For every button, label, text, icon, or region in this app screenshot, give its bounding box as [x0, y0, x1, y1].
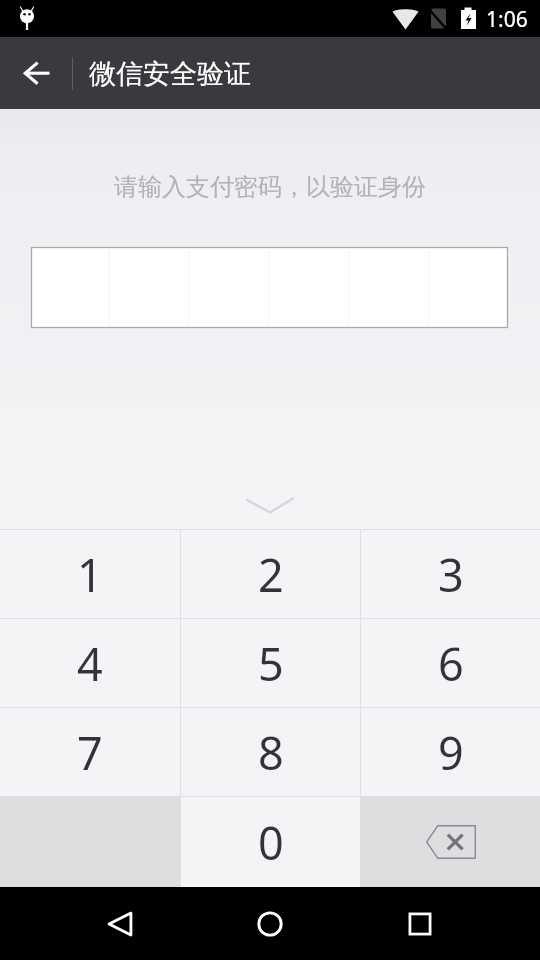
staticText: 1: [77, 544, 103, 605]
button[interactable]: 8: [181, 708, 360, 796]
button[interactable]: 5: [181, 619, 360, 707]
button[interactable]: 2: [181, 530, 360, 618]
button[interactable]: 4: [0, 619, 180, 707]
button[interactable]: Recent apps: [384, 888, 456, 960]
staticText: 1:06: [486, 5, 528, 34]
button[interactable]: 7: [0, 708, 180, 796]
staticText: 微信安全验证: [89, 57, 251, 91]
button[interactable]: Delete: [361, 797, 540, 887]
button[interactable]: 6: [361, 619, 540, 707]
staticText: 8: [258, 722, 284, 783]
staticText: 2: [258, 544, 284, 605]
staticText: 4: [77, 633, 103, 694]
button[interactable]: Payment password input: [31, 247, 508, 328]
button[interactable]: Back: [84, 888, 156, 960]
button[interactable]: 3: [361, 530, 540, 618]
staticText: 7: [77, 722, 103, 783]
staticText: 9: [438, 722, 464, 783]
button[interactable]: Back: [0, 37, 62, 109]
staticText: 0: [258, 812, 284, 873]
button[interactable]: 9: [361, 708, 540, 796]
button[interactable]: 0: [181, 797, 360, 887]
staticText: 6: [438, 633, 464, 694]
staticText: 3: [438, 544, 464, 605]
staticText: 请输入支付密码，以验证身份: [0, 172, 540, 202]
button[interactable]: Home: [234, 888, 306, 960]
button[interactable]: 1: [0, 530, 180, 618]
staticText: 5: [258, 633, 284, 694]
